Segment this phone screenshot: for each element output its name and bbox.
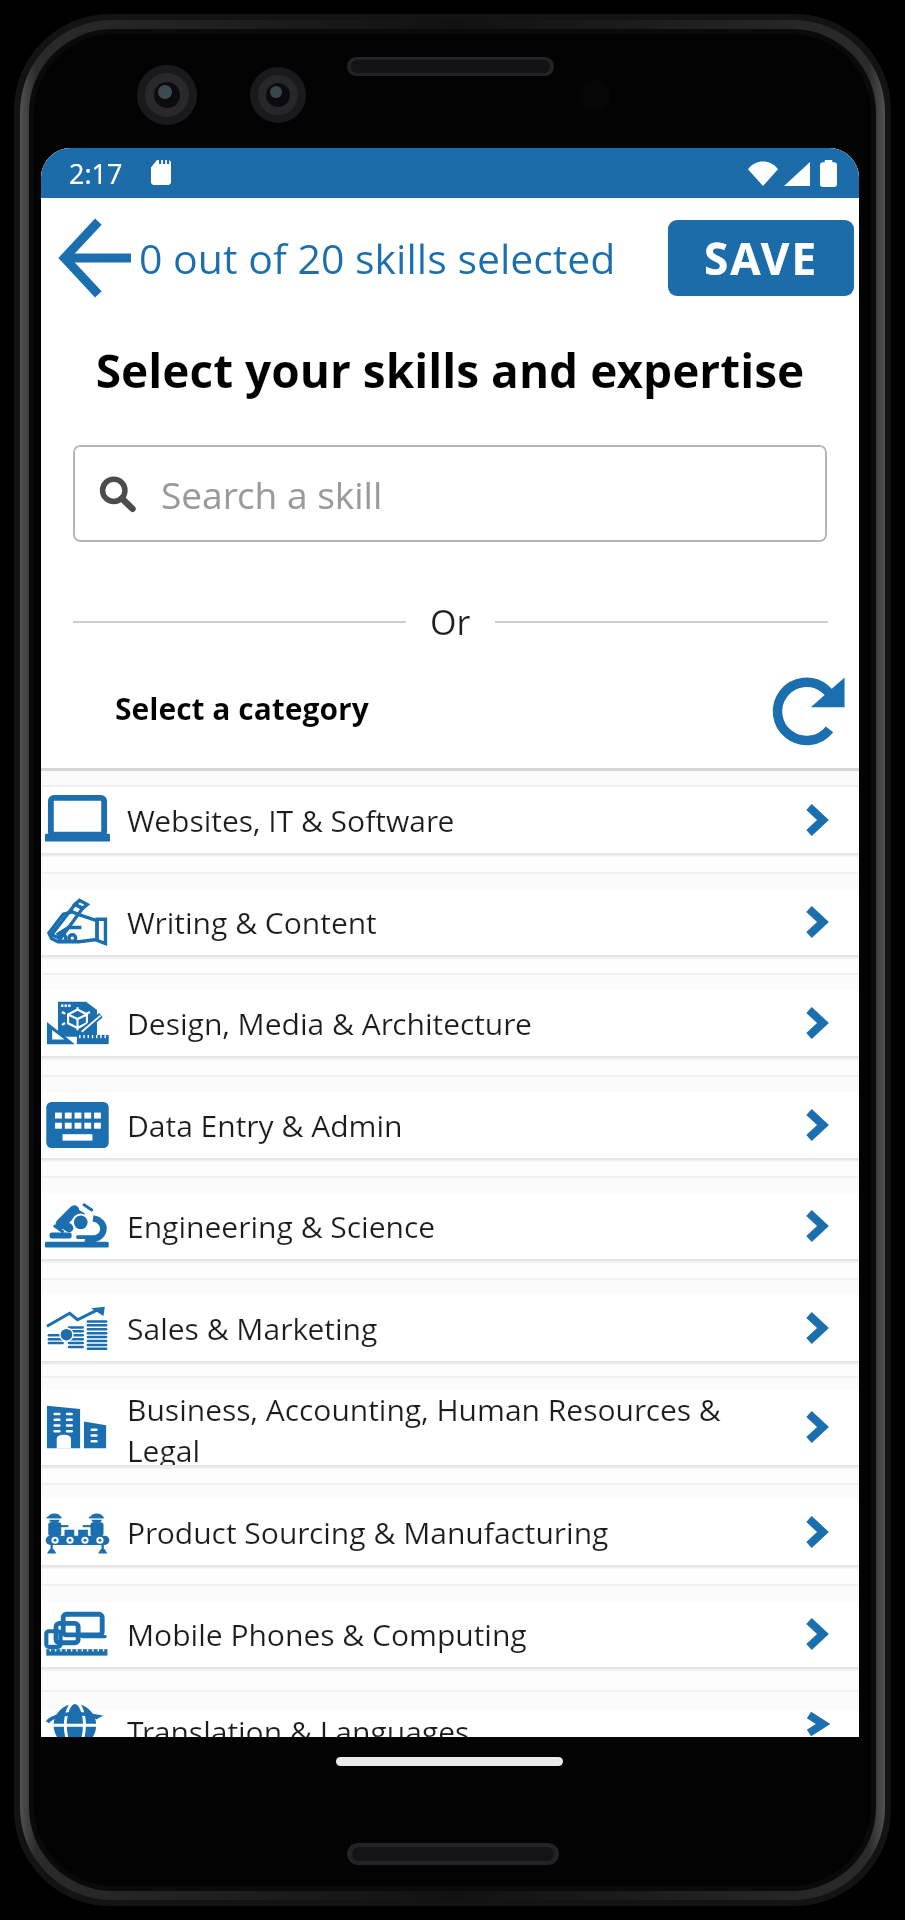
staticText: Select a category	[115, 688, 369, 729]
staticText: Websites, IT & Software	[127, 800, 779, 841]
button[interactable]: Engineering & Science	[41, 1193, 859, 1259]
button[interactable]: Business, Accounting, Human Resources & …	[41, 1389, 859, 1465]
staticText: Business, Accounting, Human Resources & …	[127, 1389, 779, 1465]
staticText: 0 out of 20 skills selected	[139, 230, 616, 286]
staticText: Translation & Languages	[127, 1711, 779, 1737]
staticText: Sales & Marketing	[127, 1308, 779, 1349]
staticText: SAVE	[704, 228, 819, 288]
button[interactable]: Translation & Languages	[41, 1711, 859, 1737]
staticText: 2:17	[69, 155, 123, 192]
button[interactable]: Back	[60, 198, 139, 317]
staticText: Writing & Content	[127, 902, 779, 943]
staticText: Product Sourcing & Manufacturing	[127, 1512, 779, 1553]
staticText: Engineering & Science	[127, 1206, 779, 1247]
button[interactable]: Product Sourcing & Manufacturing	[41, 1499, 859, 1565]
button[interactable]: Websites, IT & Software	[41, 787, 859, 853]
staticText: Mobile Phones & Computing	[127, 1614, 779, 1655]
button[interactable]: Sales & Marketing	[41, 1295, 859, 1361]
button[interactable]: SAVE	[668, 220, 854, 296]
button[interactable]: Data Entry & Admin	[41, 1092, 859, 1158]
staticText: Or	[430, 599, 471, 645]
staticText: Select your skills and expertise	[41, 339, 859, 402]
staticText: Search a skill	[161, 469, 383, 519]
staticText: Design, Media & Architecture	[127, 1003, 779, 1044]
staticText: Data Entry & Admin	[127, 1105, 779, 1146]
button[interactable]: Design, Media & Architecture	[41, 990, 859, 1056]
button[interactable]: Refresh	[753, 665, 839, 751]
button[interactable]: Search a skill	[73, 445, 827, 542]
button[interactable]: Mobile Phones & Computing	[41, 1601, 859, 1667]
button[interactable]: Writing & Content	[41, 889, 859, 955]
